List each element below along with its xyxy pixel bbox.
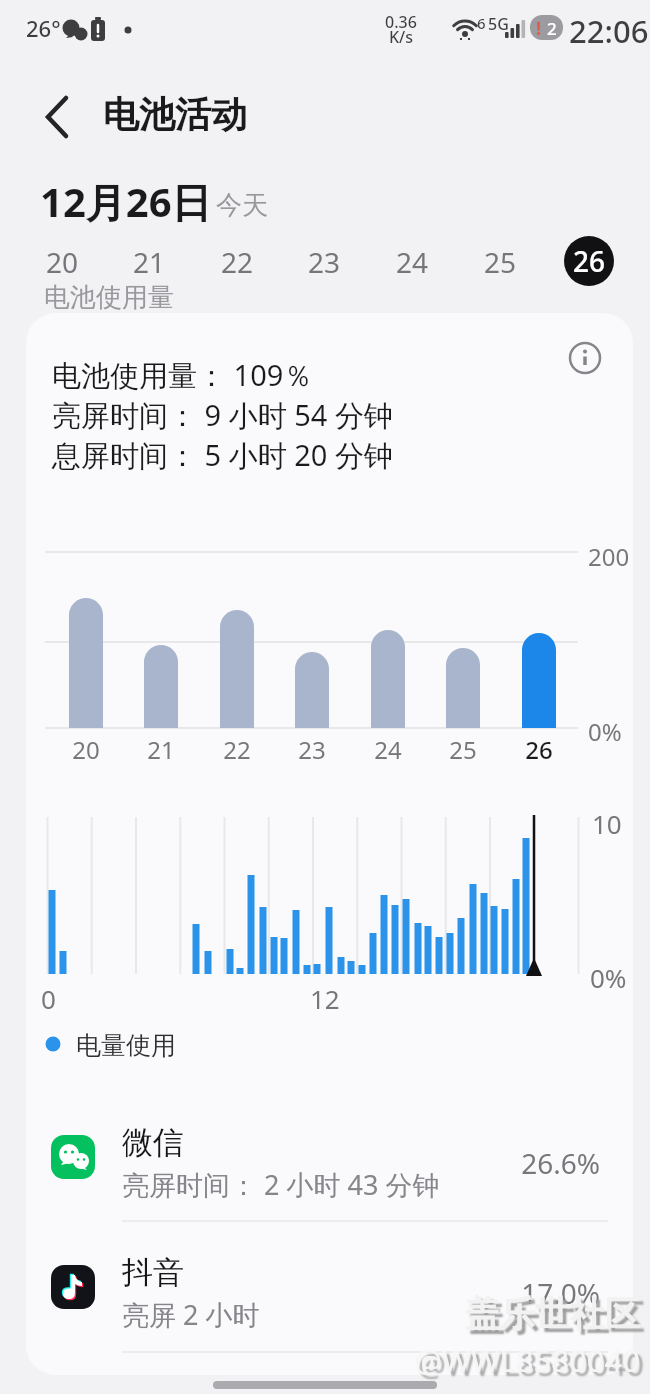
button[interactable] <box>30 90 86 146</box>
staticText: 0 <box>41 981 56 1016</box>
staticText: 2 <box>547 17 557 40</box>
staticText: 23 <box>308 243 341 281</box>
staticText: 200 <box>588 540 630 573</box>
button[interactable]: 25 <box>468 240 532 284</box>
button[interactable] <box>569 342 601 374</box>
staticText: 26 <box>573 242 606 280</box>
staticText: 5G <box>488 13 509 35</box>
staticText: 26 <box>509 733 569 766</box>
staticText: 电量使用 <box>76 1030 176 1061</box>
staticText: 26° <box>26 13 61 43</box>
staticText: 21 <box>131 733 191 766</box>
button[interactable]: 23 <box>292 240 356 284</box>
staticText: 20 <box>56 733 116 766</box>
staticText: 12 <box>310 981 340 1016</box>
staticText: 6 <box>477 13 486 33</box>
button[interactable]: 24 <box>380 240 444 284</box>
staticText: 25 <box>484 243 517 281</box>
staticText: @WWL8580040 <box>414 1339 640 1381</box>
staticText: K/s <box>378 26 424 48</box>
button[interactable]: 22 <box>205 240 269 284</box>
staticText: 亮屏时间： 9 小时 54 分钟 <box>52 395 393 435</box>
staticText: 25 <box>433 733 493 766</box>
button[interactable]: 微信 <box>26 1100 633 1221</box>
staticText: 24 <box>358 733 418 766</box>
staticText: 17.0% <box>450 1274 600 1312</box>
staticText: 亮屏时间： 2 小时 43 分钟 <box>122 1166 440 1203</box>
staticText: 电池使用量： 109％ <box>52 355 313 395</box>
staticText: 亮屏 2 小时 <box>122 1296 260 1333</box>
staticText: 0% <box>590 960 627 995</box>
staticText: 22:06 <box>569 10 649 52</box>
staticText: 0.36 <box>378 11 424 33</box>
staticText: 21 <box>133 243 166 281</box>
staticText: 26.6% <box>450 1144 600 1182</box>
staticText: 24 <box>396 243 429 281</box>
button[interactable]: 抖音 <box>26 1230 633 1351</box>
staticText: 盖乐世社区 <box>465 1292 640 1336</box>
staticText: 12月26日 <box>40 174 212 229</box>
staticText: 20 <box>46 243 79 281</box>
staticText: ! <box>536 16 542 41</box>
staticText: 电池使用量 <box>44 281 174 314</box>
staticText: 息屏时间： 5 小时 20 分钟 <box>52 435 393 475</box>
button[interactable]: 20 <box>30 240 94 284</box>
staticText: 23 <box>282 733 342 766</box>
staticText: 0% <box>588 715 622 748</box>
button[interactable]: 21 <box>117 240 181 284</box>
staticText: 电池活动 <box>103 92 247 137</box>
staticText: 22 <box>207 733 267 766</box>
staticText: 微信 <box>122 1123 184 1162</box>
staticText: 今天 <box>216 189 268 222</box>
staticText: 22 <box>221 243 254 281</box>
button[interactable]: 26 <box>564 236 614 286</box>
staticText: 10 <box>592 806 622 841</box>
staticText: 抖音 <box>122 1253 184 1292</box>
